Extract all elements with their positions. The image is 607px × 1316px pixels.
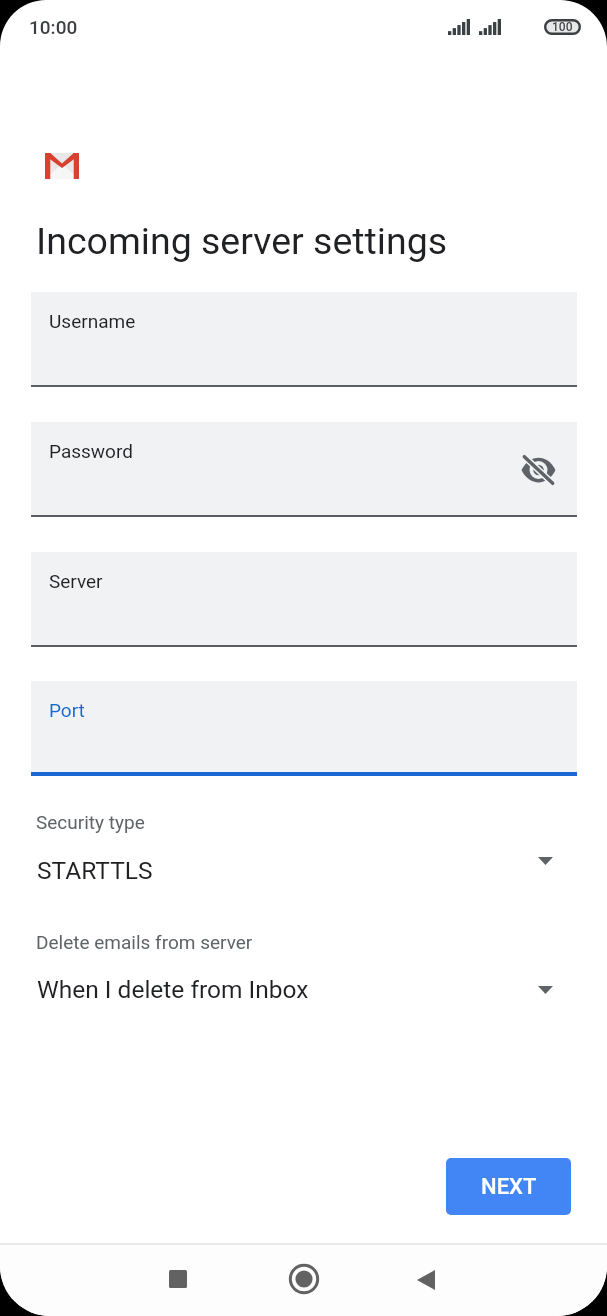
staticText: 10:00 (29, 16, 78, 38)
staticText: Delete emails from server (36, 931, 253, 953)
staticText: Incoming server settings (36, 219, 448, 263)
button[interactable]: Show password (514, 446, 562, 494)
staticText: Port (49, 699, 85, 721)
button[interactable]: Recent apps (147, 1249, 208, 1309)
button[interactable]: Server (31, 552, 577, 647)
button[interactable]: Home (273, 1249, 334, 1309)
button[interactable]: Password (31, 422, 577, 517)
button[interactable]: Username (31, 292, 577, 387)
button[interactable]: Port (31, 681, 577, 776)
button[interactable]: Security type (0, 811, 607, 881)
staticText: Security type (36, 811, 145, 833)
staticText: Username (49, 310, 136, 332)
staticText: Password (49, 440, 133, 462)
staticText: Server (49, 570, 103, 592)
button[interactable]: NEXT (446, 1158, 571, 1215)
staticText: When I delete from Inbox (37, 975, 309, 1004)
staticText: STARTTLS (37, 856, 153, 885)
button[interactable]: Back (395, 1250, 456, 1310)
staticText: NEXT (481, 1174, 537, 1200)
button[interactable]: Delete emails from server (0, 931, 607, 1010)
staticText: 100 (552, 20, 573, 34)
